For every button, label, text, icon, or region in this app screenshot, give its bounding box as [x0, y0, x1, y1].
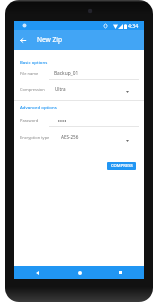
staticText: AES-256	[61, 134, 79, 140]
staticText: Ultra	[55, 86, 66, 92]
button[interactable]: Back	[32, 267, 43, 278]
staticText: Backup_01	[54, 70, 79, 77]
button[interactable]: Navigate up	[15, 32, 31, 48]
staticText: 4:34	[128, 22, 139, 29]
staticText: COMPRESS	[111, 163, 133, 169]
staticText: Encryption type	[20, 135, 50, 140]
button[interactable]: COMPRESS	[107, 162, 136, 170]
staticText: File name	[20, 71, 39, 76]
staticText: Advanced options	[20, 104, 57, 110]
staticText: Password	[20, 118, 39, 123]
staticText: New Zip	[37, 35, 63, 44]
button[interactable]: Home	[74, 267, 85, 278]
staticText: Compression	[20, 87, 45, 92]
staticText: Basic options	[20, 59, 48, 65]
button[interactable]: Recent apps	[115, 267, 126, 278]
